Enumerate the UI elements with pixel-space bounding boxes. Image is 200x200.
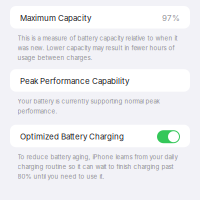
button[interactable]: Peak Performance Capability [10, 69, 190, 92]
staticText: To reduce battery aging, iPhone learns f… [17, 153, 177, 180]
staticText: Peak Performance Capability [20, 76, 129, 86]
staticText: Your battery is currently supporting nor… [17, 98, 159, 115]
staticText: 97% [162, 13, 180, 23]
button[interactable]: Maximum Capacity [10, 6, 190, 28]
staticText: Optimized Battery Charging [20, 132, 124, 142]
staticText: This is a measure of battery capacity re… [17, 34, 177, 62]
button[interactable]: Optimized Battery Charging [10, 125, 190, 147]
staticText: Maximum Capacity [20, 13, 91, 23]
